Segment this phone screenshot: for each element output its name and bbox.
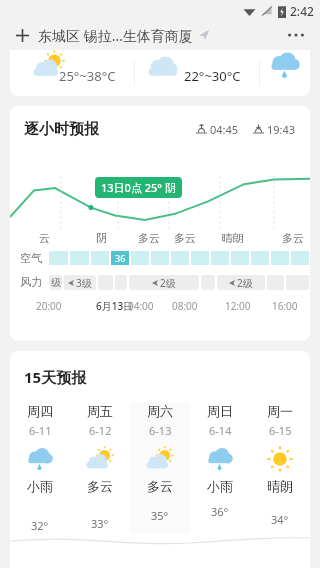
- staticText: 36°: [211, 504, 229, 519]
- staticText: 34°: [271, 512, 289, 527]
- staticText: 周一: [267, 403, 293, 419]
- staticText: 25°~38°C: [59, 67, 116, 85]
- button[interactable]: 周五: [70, 403, 130, 533]
- staticText: 2级: [160, 276, 176, 290]
- staticText: 东城区 锡拉…生体育商厦: [38, 26, 193, 45]
- staticText: 晴朗: [222, 231, 244, 245]
- staticText: 04:45: [210, 122, 239, 137]
- staticText: 6-14: [209, 423, 232, 438]
- staticText: 20:00: [36, 299, 62, 313]
- staticText: 36: [115, 252, 126, 264]
- staticText: 6-11: [29, 423, 52, 438]
- staticText: 逐小时预报: [24, 120, 99, 139]
- staticText: 16:00: [272, 299, 298, 313]
- staticText: 多云: [147, 478, 173, 494]
- staticText: 空气: [20, 251, 42, 265]
- staticText: 08:00: [172, 299, 198, 313]
- staticText: 小雨: [27, 478, 53, 494]
- staticText: 12:00: [225, 299, 251, 313]
- staticText: 周六: [147, 403, 173, 419]
- staticText: 2:42: [290, 3, 314, 19]
- button[interactable]: 25°~38°C: [10, 50, 310, 96]
- staticText: 多云: [282, 231, 304, 245]
- button[interactable]: 周一: [250, 403, 310, 533]
- staticText: 多云: [87, 478, 113, 494]
- staticText: 22°~30°C: [184, 67, 241, 85]
- button[interactable]: 周六: [130, 403, 190, 533]
- staticText: 13日0点 25° 阴: [101, 180, 176, 195]
- staticText: 6-15: [269, 423, 292, 438]
- staticText: 风力: [20, 275, 42, 289]
- staticText: 6月13日: [96, 299, 134, 313]
- staticText: 2级: [237, 276, 253, 290]
- staticText: 32°: [31, 518, 49, 533]
- button[interactable]: More options: [284, 23, 308, 47]
- staticText: 周日: [207, 403, 233, 419]
- staticText: 33°: [91, 516, 109, 531]
- button[interactable]: 周日: [190, 403, 250, 533]
- staticText: 35°: [151, 508, 169, 523]
- staticText: 19:43: [267, 122, 296, 137]
- button[interactable]: 周四: [10, 403, 70, 533]
- staticText: 多云: [138, 231, 160, 245]
- staticText: 小雨: [207, 478, 233, 494]
- staticText: 周五: [87, 403, 113, 419]
- staticText: 云: [39, 231, 50, 245]
- staticText: 多云: [174, 231, 196, 245]
- staticText: 级: [51, 276, 61, 289]
- staticText: 周四: [27, 403, 53, 419]
- staticText: 6-13: [149, 423, 172, 438]
- staticText: 晴朗: [267, 478, 293, 494]
- staticText: 6-12: [89, 423, 112, 438]
- staticText: 3级: [76, 276, 92, 290]
- button[interactable]: Add city: [12, 25, 32, 45]
- staticText: 阴: [96, 231, 107, 245]
- staticText: 04:00: [128, 299, 154, 313]
- staticText: 15天预报: [24, 367, 87, 387]
